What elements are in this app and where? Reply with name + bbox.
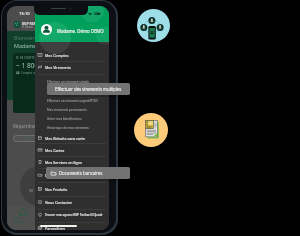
button[interactable]: Mes Retraits sans carte [35, 132, 109, 144]
button[interactable]: Documents bancaires [134, 113, 168, 147]
staticText: Mes Services en ligne [45, 160, 83, 165]
button[interactable]: Virements multiples [137, 9, 170, 42]
button[interactable]: Mes Cartes [35, 144, 109, 156]
staticText: Mes virements permanents [47, 108, 87, 112]
button[interactable]: Effectuer des virements multiples [35, 87, 109, 96]
button[interactable] [41, 24, 52, 35]
staticText: Nous Contacter [45, 200, 72, 205]
staticText: Effectuer des virements multiples [47, 90, 96, 94]
button[interactable]: Effectuer des virements multiples [47, 83, 130, 95]
staticText: Répartition [13, 123, 38, 129]
button[interactable]: Effectuer un virement urgent/RTGS [35, 96, 109, 105]
staticText: Bienvenue [14, 34, 41, 41]
staticText: Gérer mes bénéficiaires [47, 117, 82, 121]
staticText: Madame [14, 42, 37, 49]
button[interactable]: Gérer mes bénéficiaires [35, 114, 109, 123]
staticText: Mes Comptes [45, 53, 69, 58]
staticText: Madame. Démo DEMO [57, 28, 104, 34]
staticText: Documents bancaires [45, 173, 83, 178]
staticText: ~ 1 800 [16, 61, 39, 70]
staticText: Mes comptes [14, 216, 31, 224]
staticText: Documents bancaires [59, 170, 103, 176]
staticText: Effectuer un virement urgent/RTGS [47, 99, 98, 103]
staticText: Compte courant [21, 71, 44, 75]
staticText: Paramètres [45, 226, 65, 230]
button[interactable]: Mes Virements [35, 61, 109, 73]
button[interactable]: Nous Contacter [35, 196, 109, 208]
button[interactable]: Trouver mon agence BNP Paribas El Djazaï… [35, 209, 109, 221]
staticText: Mes Cartes [45, 148, 65, 153]
staticText: Mes Retraits sans carte [45, 136, 85, 141]
button[interactable]: Nos Produits [35, 183, 109, 195]
staticText: Mes Virements [45, 65, 71, 70]
staticText: N° DE COMPTE 00123456 [16, 56, 48, 60]
button[interactable]: Mes virements permanents [35, 105, 109, 114]
button[interactable]: Historique de mes virements [35, 123, 109, 132]
staticText: Historique de mes virements [47, 126, 89, 130]
button[interactable]: Mes Services en ligne [35, 156, 109, 168]
button[interactable]: Paramètres [35, 222, 109, 230]
button[interactable]: Tous [13, 135, 39, 142]
staticText: Nos Produits [45, 187, 68, 192]
staticText: Tous [25, 136, 32, 140]
staticText: BNP PARIBAS [22, 22, 43, 26]
staticText: Effectuer un virement simple [47, 80, 89, 84]
button[interactable]: Mes comptes [14, 208, 31, 224]
staticText: El Djazaïr [22, 25, 34, 29]
button[interactable]: Documents bancaires [46, 167, 130, 179]
button[interactable]: Effectuer un virement simple [35, 77, 109, 86]
staticText: Effectuer des virements multiples [55, 86, 122, 92]
button[interactable]: Mes Comptes [35, 49, 109, 61]
staticText: Trouver mon agence BNP Paribas El Djazaï… [45, 213, 103, 217]
button[interactable]: Documents bancaires [35, 169, 109, 181]
staticText: 15:10 [19, 11, 30, 17]
